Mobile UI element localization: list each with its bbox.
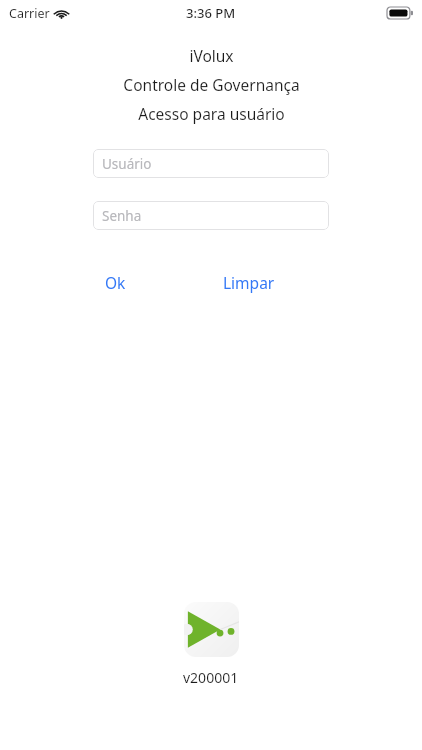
staticText: v200001 [183,668,239,687]
staticText: Acesso para usuário [138,103,285,124]
other: App logo [184,602,239,657]
button[interactable]: Senha [93,201,329,230]
staticText: Usuário [102,155,152,173]
staticText: Limpar [223,272,275,293]
staticText: 3:36 PM [186,4,236,22]
staticText: Controle de Governança [123,74,300,95]
button[interactable]: Usuário [93,149,329,178]
staticText: Carrier [9,5,50,22]
staticText: Senha [102,207,142,225]
button[interactable]: Limpar [211,267,287,298]
staticText: iVolux [189,45,234,66]
staticText: Ok [105,272,126,293]
button[interactable]: Ok [93,267,138,298]
